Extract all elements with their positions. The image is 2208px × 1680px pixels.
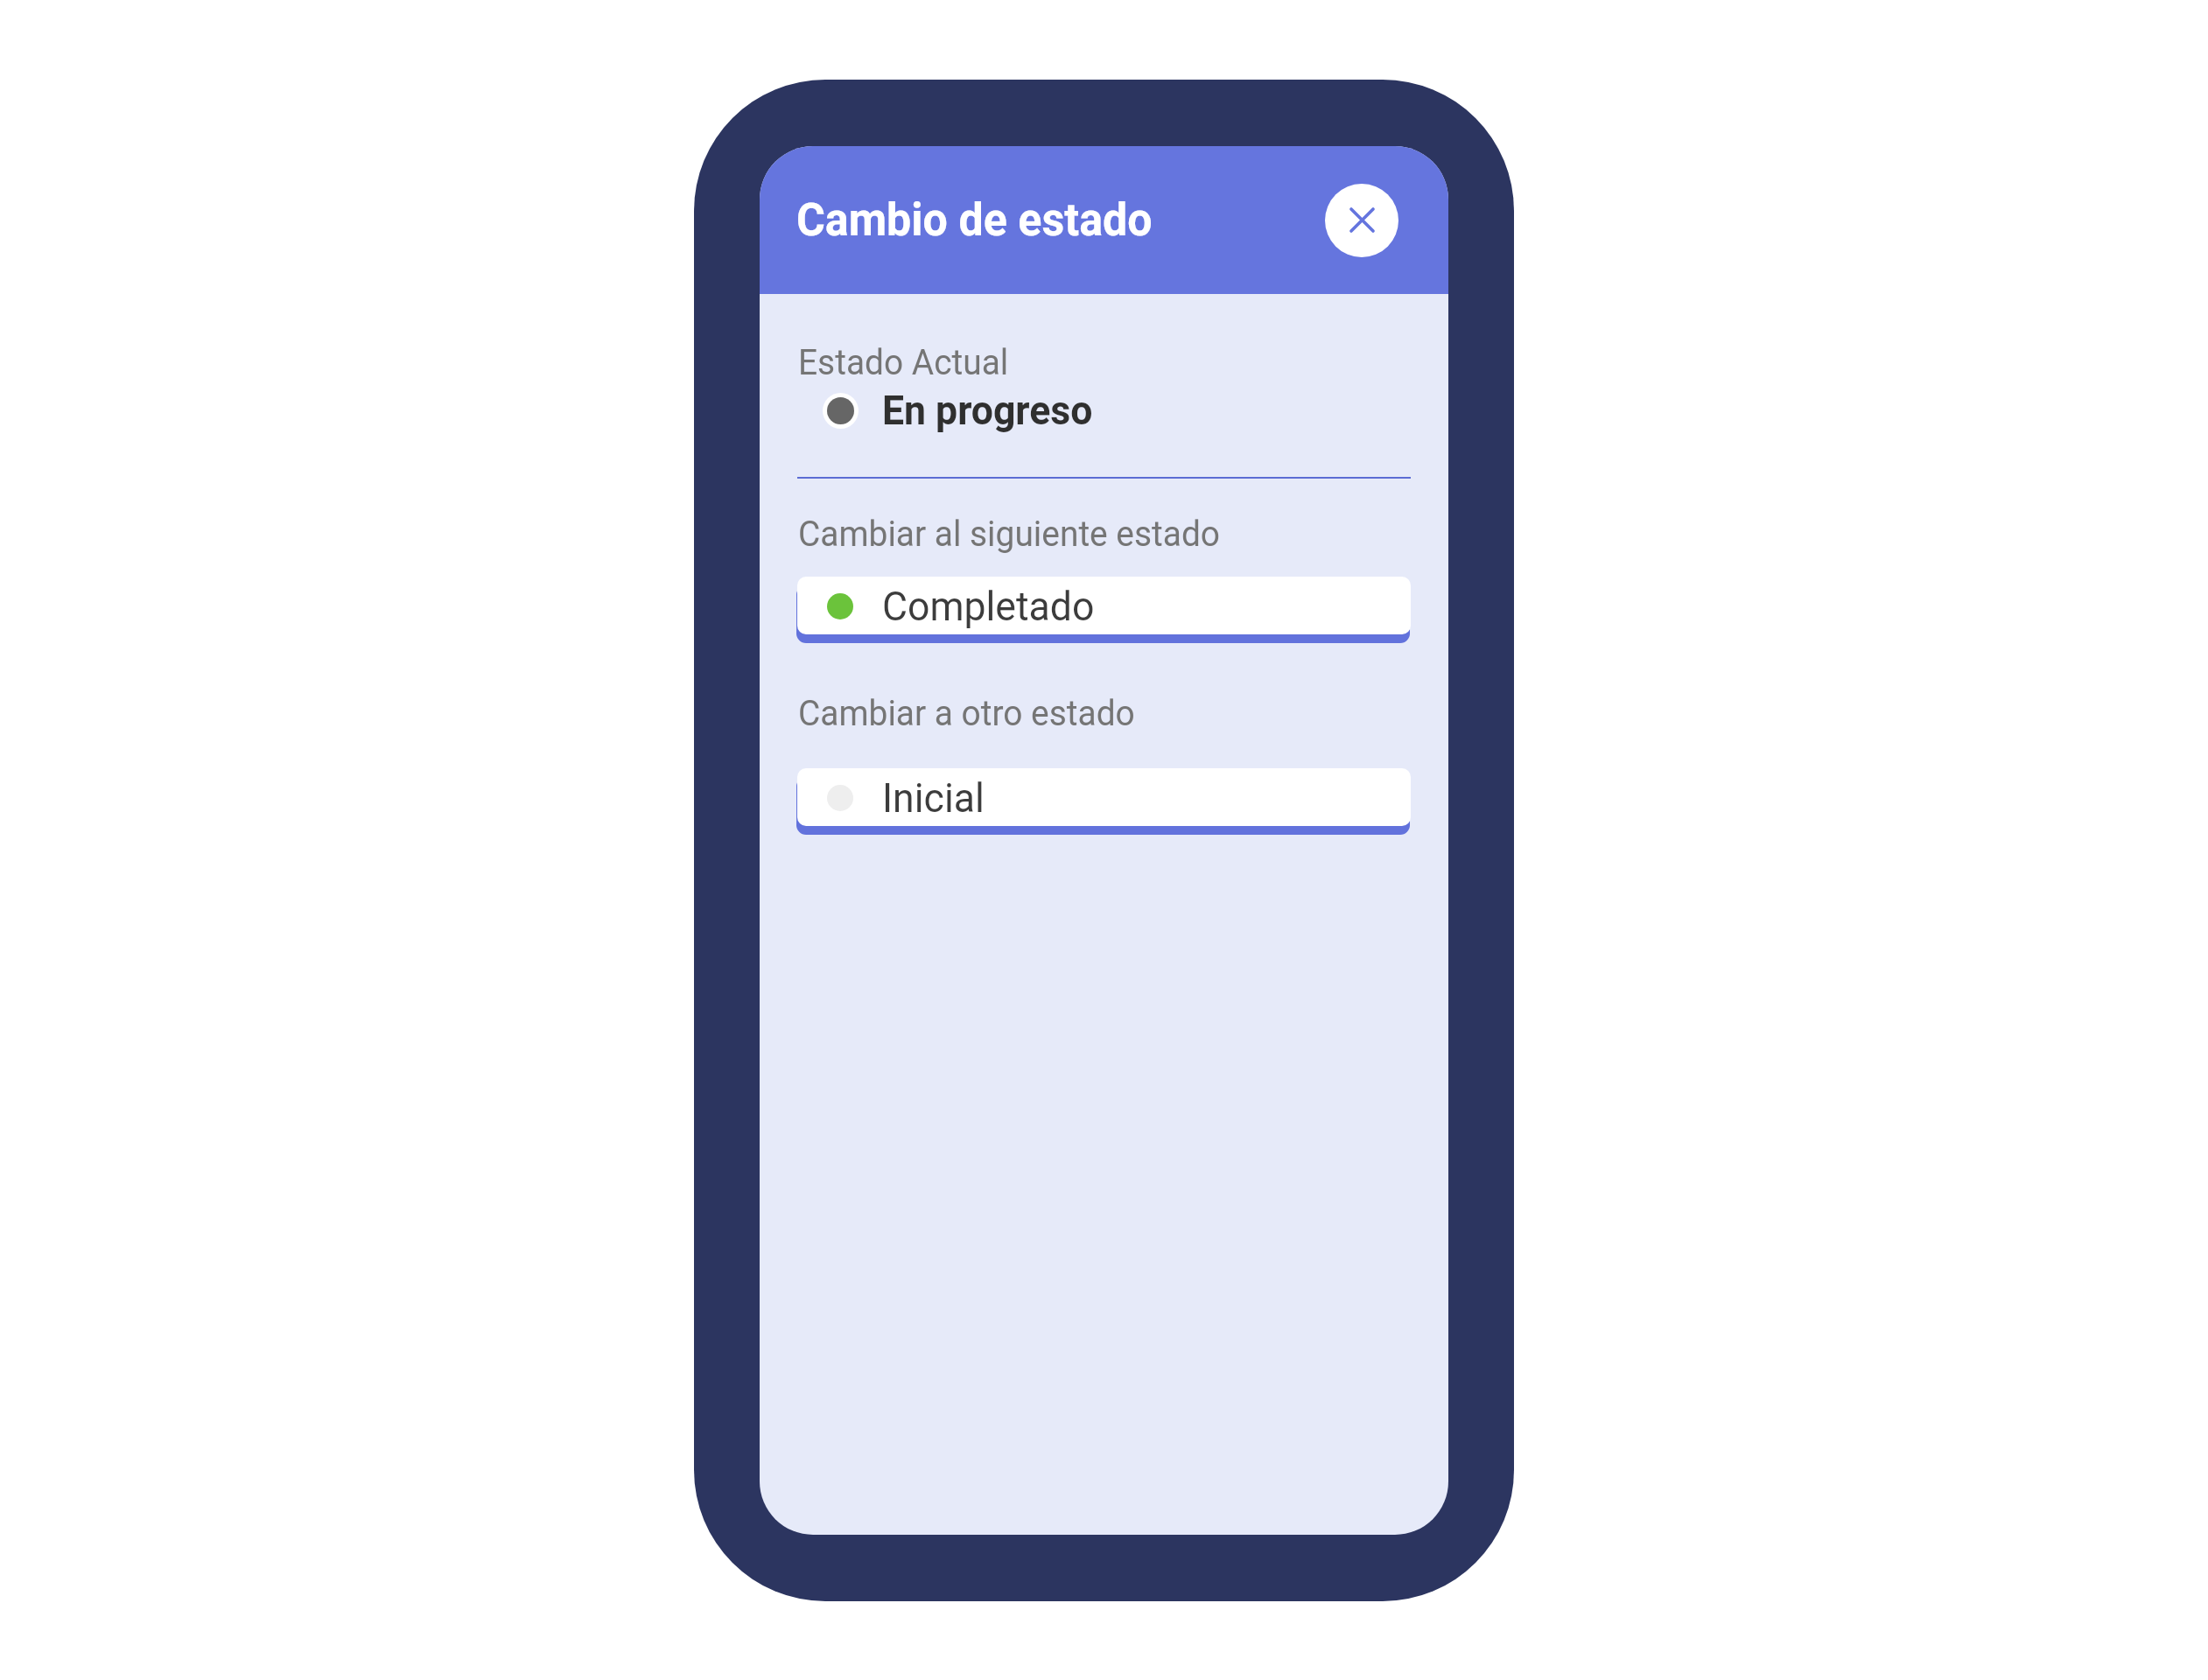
button[interactable]: Completado — [797, 577, 1411, 634]
staticText: Cambiar a otro estado — [798, 693, 1135, 734]
button[interactable]: Cerrar — [1325, 184, 1398, 257]
staticText: Cambio de estado — [796, 194, 1153, 247]
staticText: En progreso — [882, 386, 1093, 434]
staticText: Estado Actual — [798, 342, 1009, 383]
staticText: Cambiar al siguiente estado — [798, 514, 1220, 555]
button[interactable]: Inicial — [797, 768, 1411, 826]
staticText: Completado — [882, 582, 1095, 630]
staticText: Inicial — [882, 773, 985, 822]
